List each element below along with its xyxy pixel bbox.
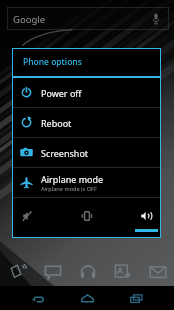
button[interactable]: Silent mode [0, 198, 57, 237]
button[interactable]: Power off [13, 78, 160, 107]
button[interactable]: Back [20, 286, 56, 310]
button[interactable]: Tags [0, 255, 35, 289]
button[interactable]: Home [69, 286, 105, 310]
staticText: Airplane mode is OFF [41, 185, 97, 193]
staticText: Screenshot [41, 147, 89, 159]
button[interactable]: Vibrate mode [58, 198, 116, 237]
button[interactable]: Airplane mode [13, 168, 160, 197]
staticText: Reboot [41, 117, 72, 129]
button[interactable]: Talk [35, 255, 70, 289]
other: Voice search [152, 13, 160, 25]
button[interactable]: Reboot [13, 108, 160, 137]
button[interactable]: Google Plus [105, 255, 140, 289]
staticText: Phone options [23, 56, 82, 68]
button[interactable]: Sound on [117, 198, 174, 237]
staticText: Airplane mode [41, 173, 104, 185]
staticText: Power off [41, 87, 82, 99]
button[interactable]: Music [70, 255, 105, 289]
staticText: Google [13, 13, 46, 26]
button[interactable]: Screenshot [13, 138, 160, 167]
button[interactable]: Email [140, 255, 174, 289]
button[interactable]: Google [7, 7, 169, 30]
button[interactable]: Recents [118, 286, 154, 310]
